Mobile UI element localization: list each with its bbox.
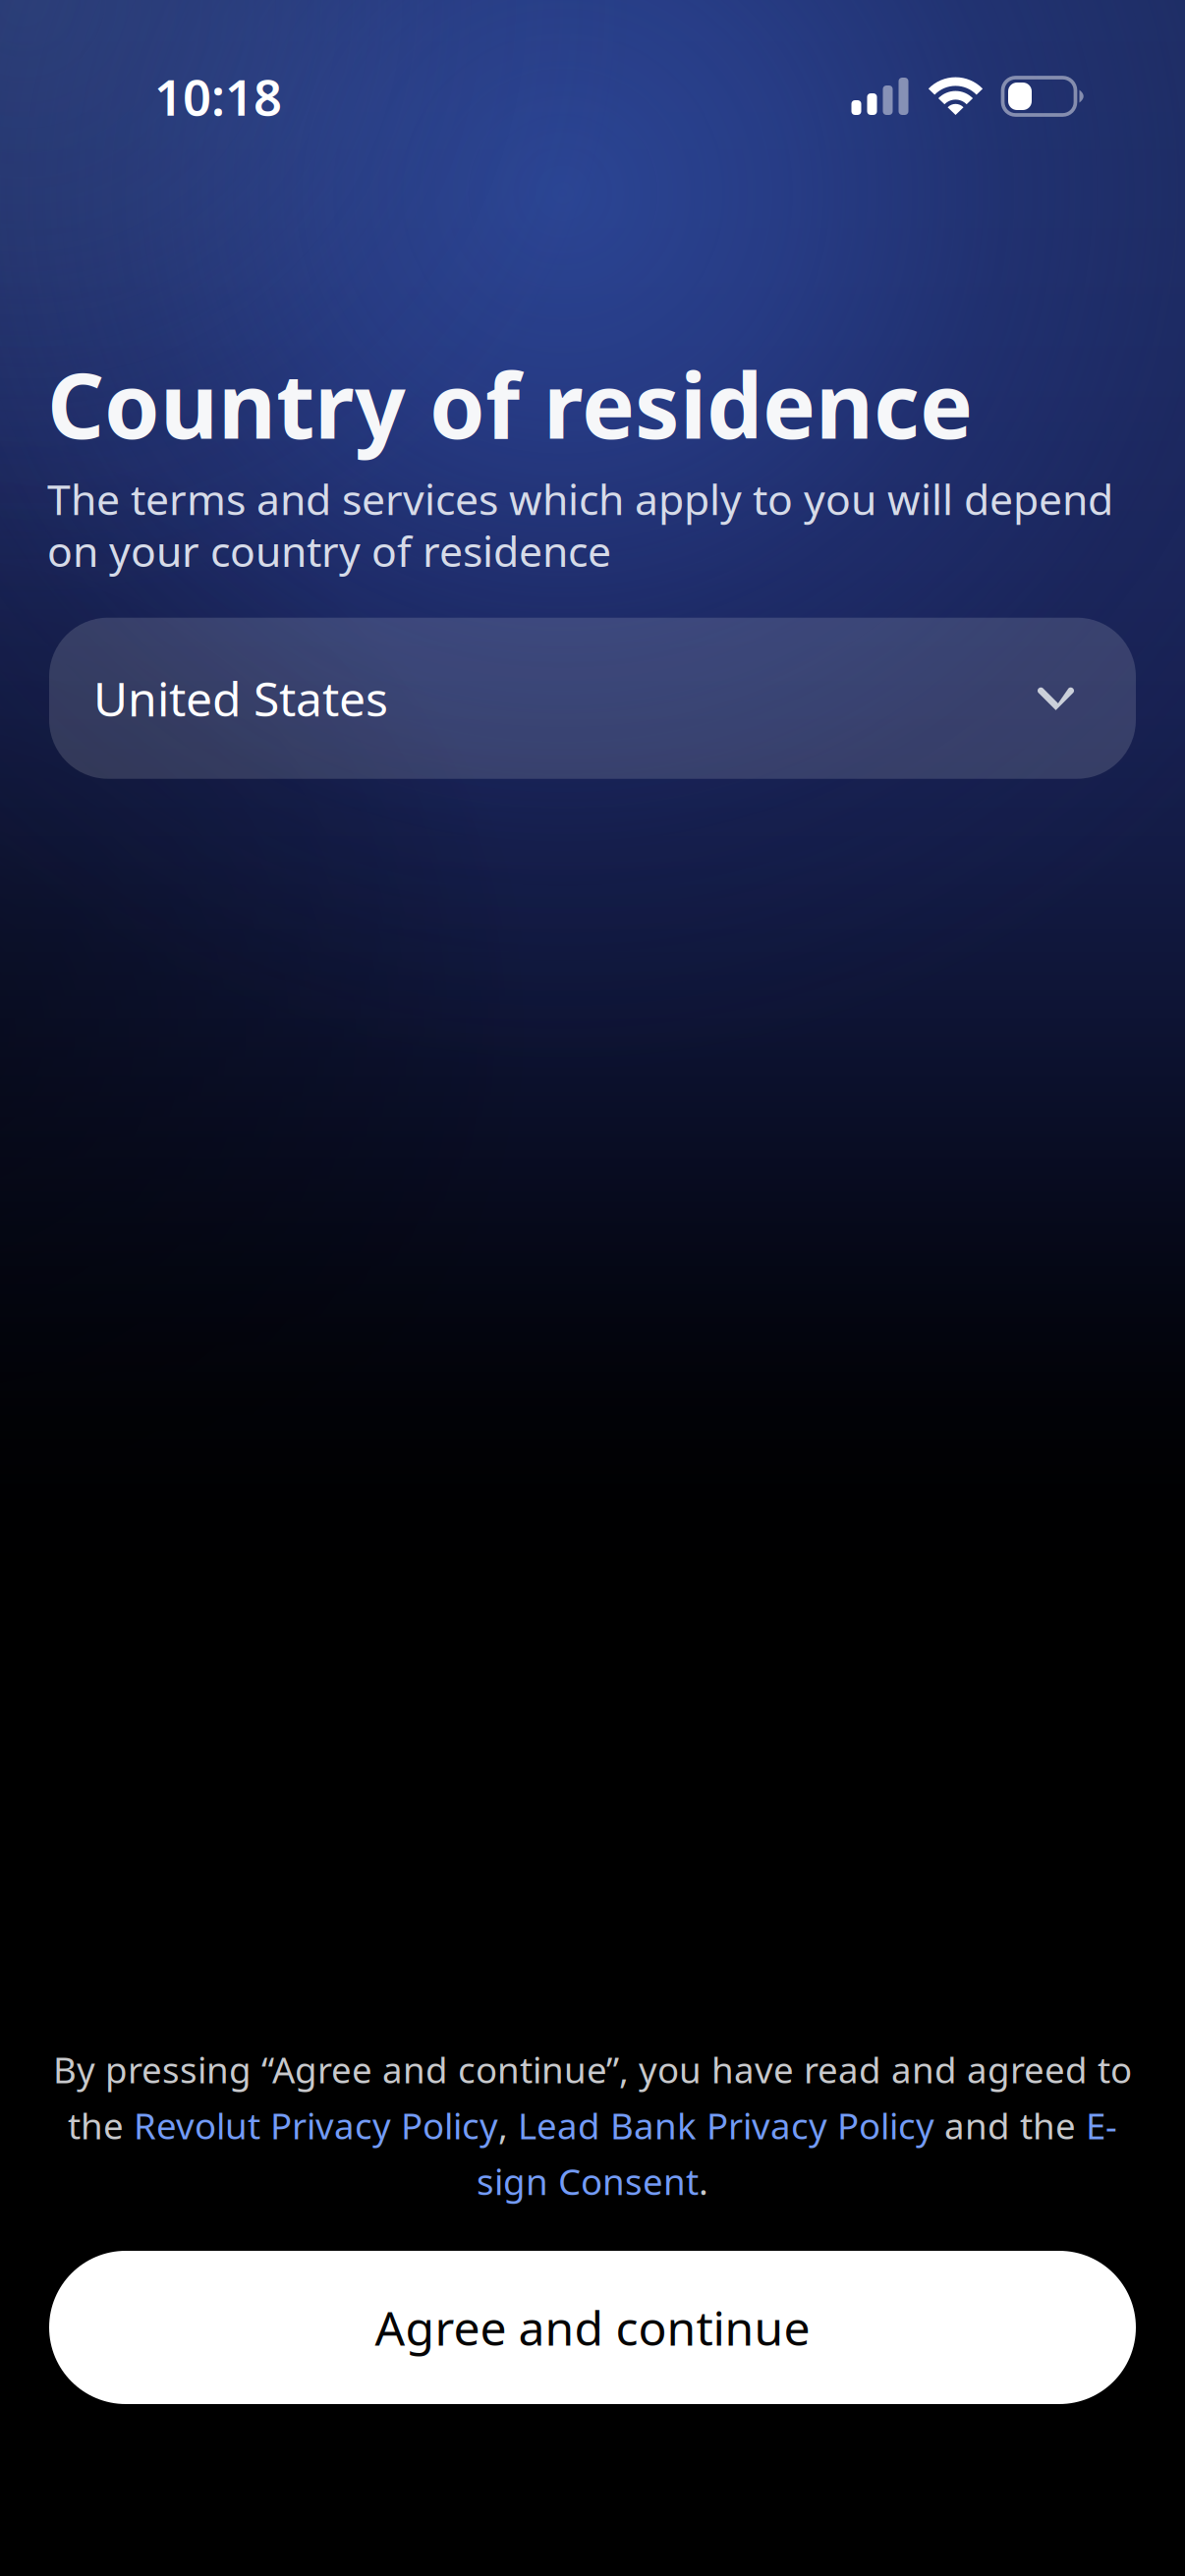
staticText: By pressing “Agree and continue”, you ha…: [53, 2045, 1132, 2094]
button[interactable]: Agree and continue: [49, 2251, 1136, 2404]
button[interactable]: Lead Bank Privacy Policy: [518, 2101, 934, 2150]
staticText: Lead Bank Privacy Policy: [518, 2101, 934, 2150]
button[interactable]: Country of residence, United States: [49, 618, 1136, 779]
staticText: sign Consent: [477, 2157, 699, 2206]
staticText: 10:18: [154, 63, 282, 129]
button[interactable]: Revolut Privacy Policy: [134, 2101, 498, 2150]
staticText: ,: [498, 2101, 518, 2150]
staticText: Agree and continue: [375, 2296, 810, 2359]
staticText: .: [699, 2157, 708, 2206]
staticText: Country of residence: [47, 345, 973, 463]
staticText: E-: [1086, 2101, 1117, 2150]
staticText: Revolut Privacy Policy: [134, 2101, 498, 2150]
staticText: and the: [934, 2101, 1086, 2150]
staticText: the: [68, 2101, 134, 2150]
staticText: The terms and services which apply to yo…: [47, 471, 1113, 578]
staticText: United States: [93, 667, 388, 730]
